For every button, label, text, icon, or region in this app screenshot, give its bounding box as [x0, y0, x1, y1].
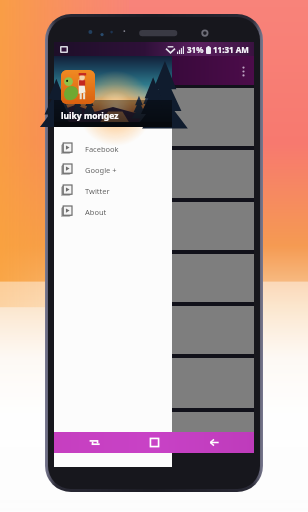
- button[interactable]: Back: [194, 432, 234, 453]
- button[interactable]: About: [54, 201, 172, 222]
- staticText: Twitter: [85, 186, 110, 196]
- button[interactable]: Google +: [54, 159, 172, 180]
- button[interactable]: [54, 88, 254, 146]
- button[interactable]: More options: [236, 64, 250, 78]
- button[interactable]: [54, 202, 254, 250]
- button[interactable]: Facebook: [54, 138, 172, 159]
- button[interactable]: [54, 306, 254, 354]
- button[interactable]: [54, 412, 254, 453]
- button[interactable]: [54, 254, 254, 302]
- staticText: 11:31 AM: [213, 44, 249, 55]
- button[interactable]: [54, 358, 254, 408]
- staticText: Facebook: [85, 144, 119, 154]
- staticText: Google +: [85, 165, 117, 175]
- staticText: About: [85, 207, 107, 217]
- staticText: 31%: [187, 44, 204, 55]
- button[interactable]: Twitter: [54, 180, 172, 201]
- button[interactable]: Recent apps: [74, 432, 114, 453]
- button[interactable]: Home: [134, 432, 174, 453]
- staticText: luiky morigez: [61, 110, 119, 122]
- button[interactable]: [54, 150, 254, 198]
- button[interactable]: Profile picture: [61, 70, 95, 104]
